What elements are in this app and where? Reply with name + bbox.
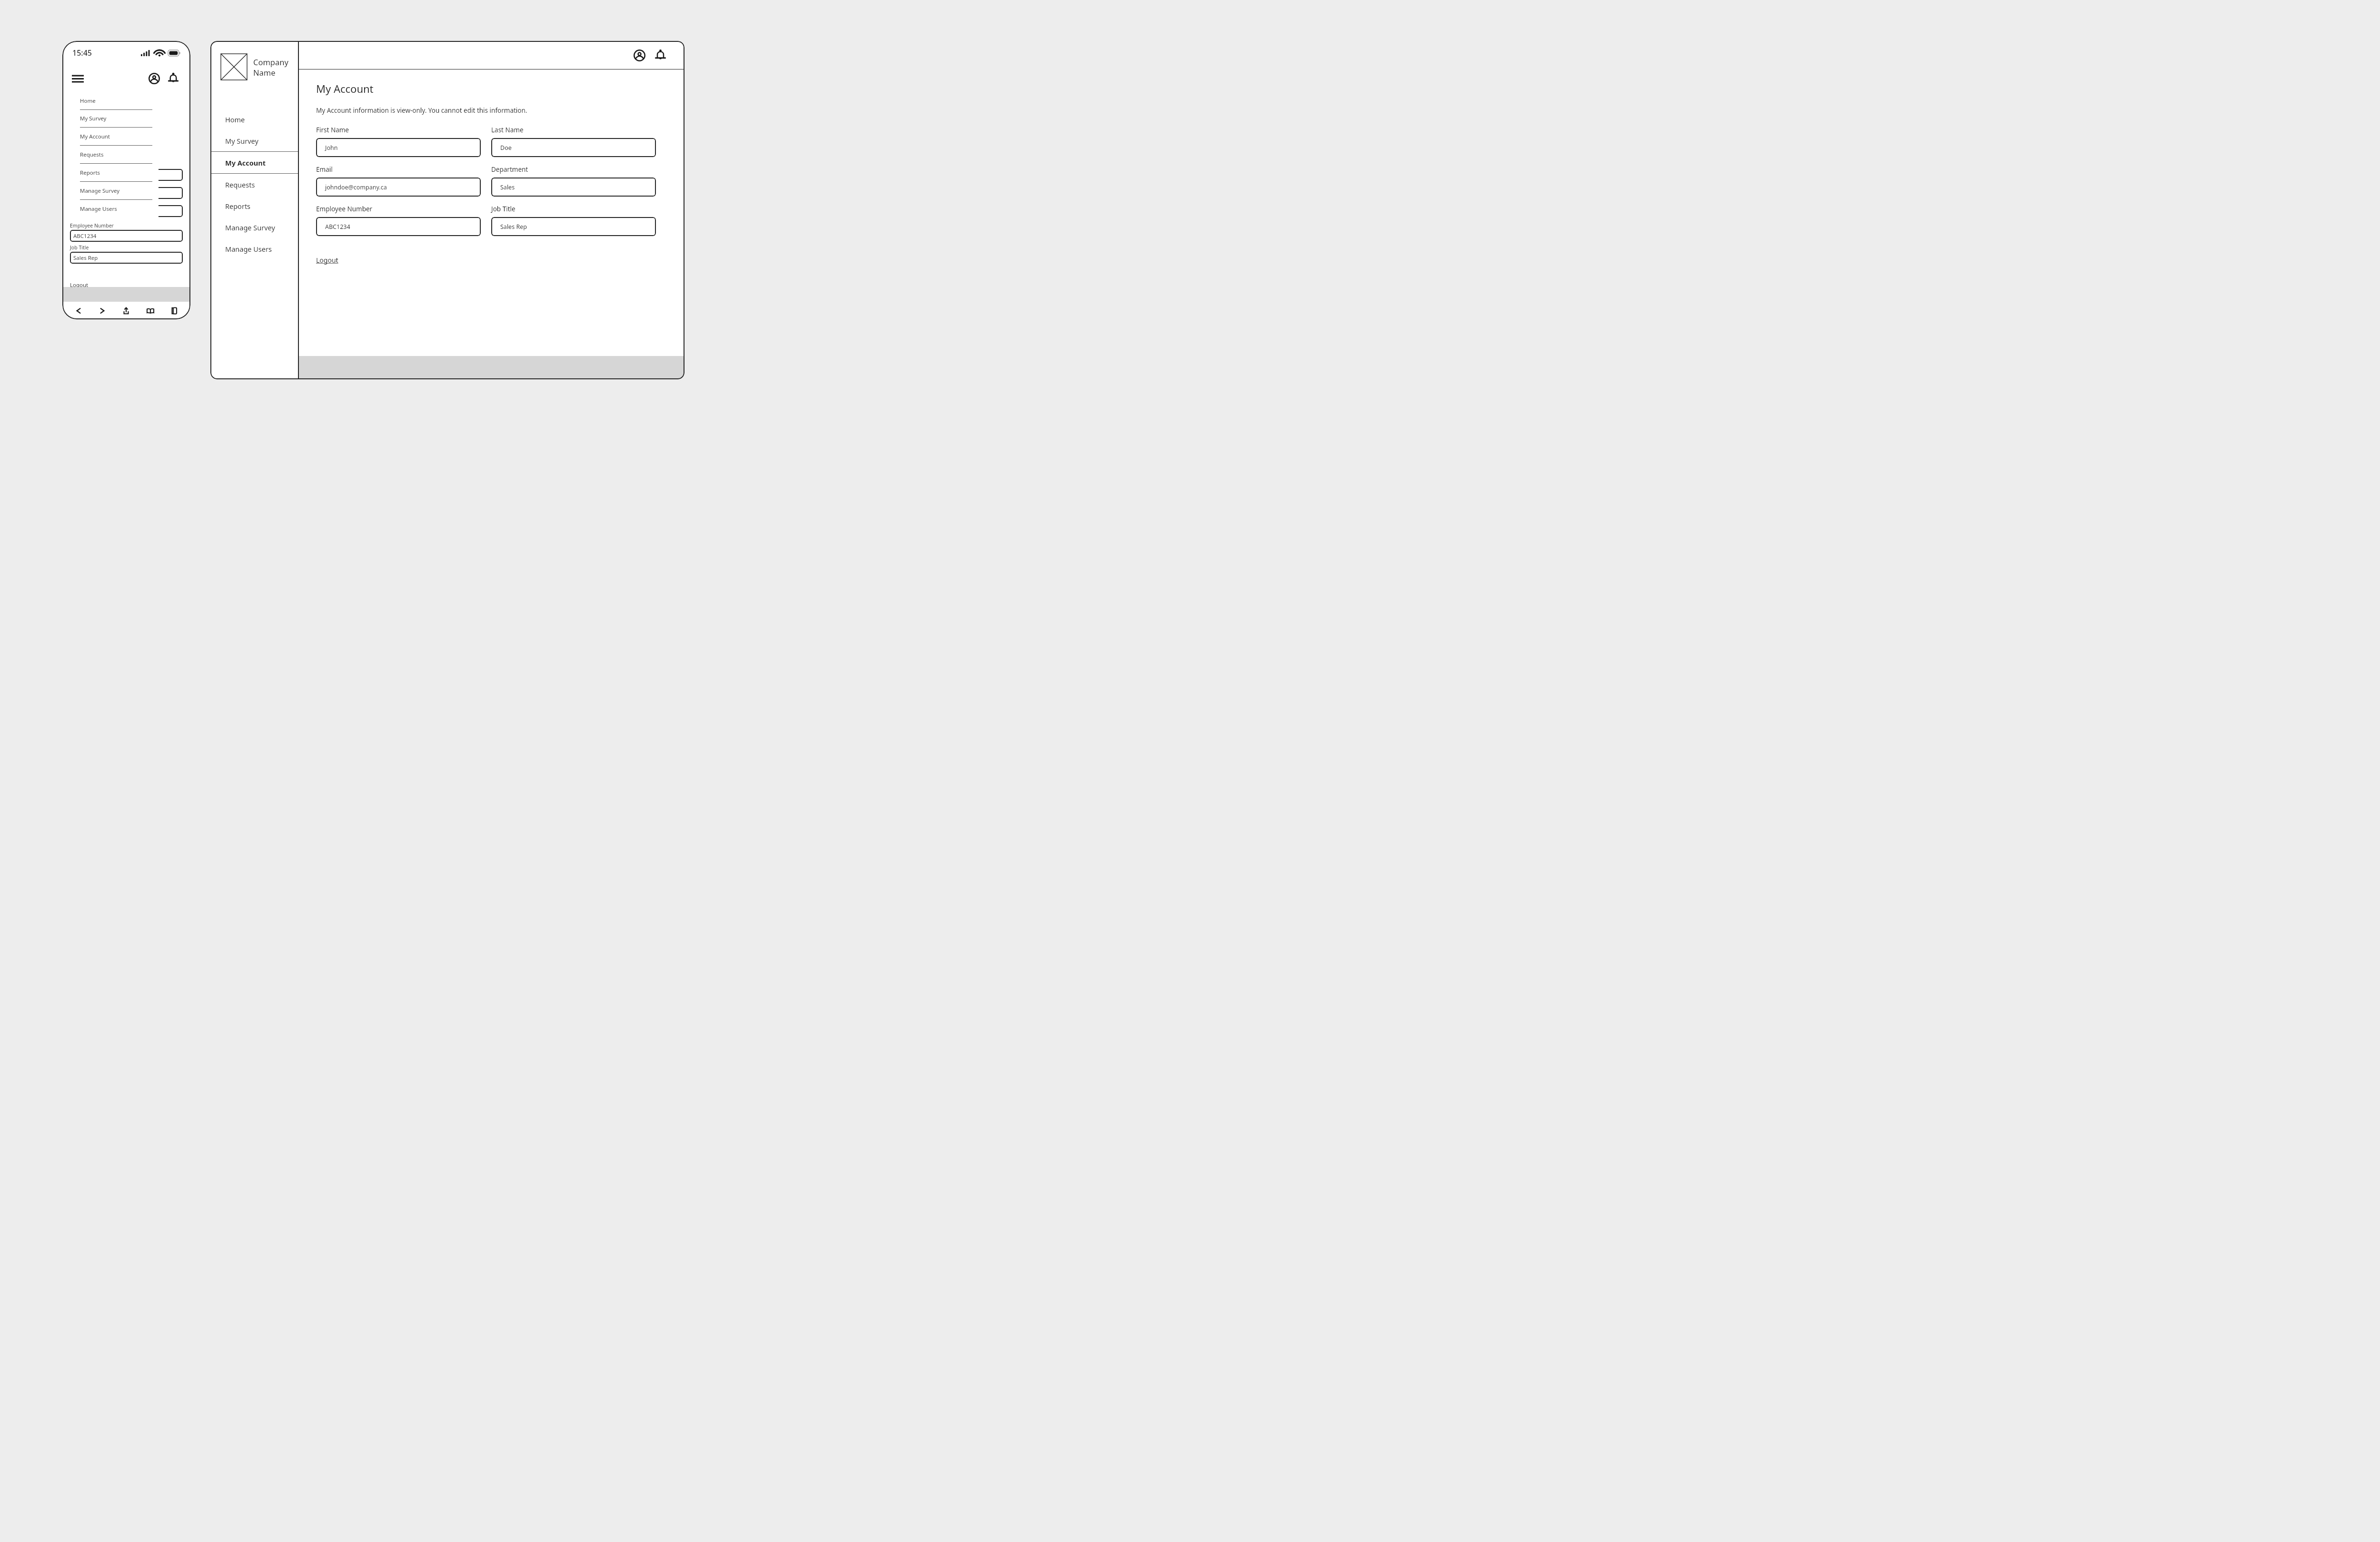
staticText: Last Name	[491, 126, 524, 134]
button[interactable]: ABC1234	[70, 230, 183, 242]
button[interactable]: Tabs	[167, 303, 182, 318]
staticText: My Survey	[225, 136, 258, 146]
button[interactable]: Manage Users	[210, 238, 298, 259]
staticText: My Survey	[80, 115, 107, 122]
button[interactable]: Requests	[210, 174, 298, 195]
staticText: My Account information is view-only. You…	[316, 106, 527, 115]
staticText: Department	[491, 165, 528, 174]
staticText: Email	[316, 165, 333, 174]
button[interactable]: Doe	[491, 138, 656, 157]
button[interactable]: Home	[80, 92, 152, 110]
staticText: Company	[253, 57, 288, 67]
staticText: Reports	[80, 169, 100, 177]
staticText: Manage Survey	[80, 187, 120, 195]
button[interactable]: Notifications	[652, 47, 668, 63]
staticText: Reports	[225, 201, 251, 211]
staticText: Sales	[500, 183, 515, 191]
staticText: Name	[253, 67, 276, 78]
staticText: My Account	[80, 133, 110, 140]
button[interactable]: Manage Users	[80, 200, 152, 218]
staticText: Manage Users	[225, 244, 272, 254]
button[interactable]: Account	[631, 47, 647, 63]
button[interactable]: Open navigation menu	[72, 70, 88, 87]
button[interactable]: Home	[210, 109, 298, 130]
staticText: ABC1234	[73, 232, 97, 240]
staticText: Home	[225, 115, 245, 124]
staticText: Job Title	[491, 205, 516, 213]
staticText: Manage Users	[80, 205, 117, 213]
staticText: Requests	[80, 151, 104, 158]
staticText: Sales Rep	[73, 254, 98, 262]
staticText: Home	[80, 97, 96, 105]
button[interactable]: Manage Survey	[80, 182, 152, 200]
button[interactable]: johndoe@company.ca	[316, 178, 481, 197]
button[interactable]: Account	[147, 71, 162, 86]
button[interactable]: Reports	[80, 164, 152, 182]
button[interactable]: John	[316, 138, 481, 157]
staticText: John	[325, 144, 338, 152]
staticText: My Account	[225, 158, 266, 168]
button[interactable]: Reports	[210, 195, 298, 217]
button[interactable]: Sales Rep	[70, 252, 183, 264]
button[interactable]: Sales Rep	[491, 217, 656, 236]
staticText: Requests	[225, 180, 255, 189]
button[interactable]: Notifications	[166, 71, 181, 86]
button[interactable]: My Survey	[210, 130, 298, 151]
staticText: Logout	[70, 281, 89, 287]
button[interactable]: Forward	[95, 303, 110, 318]
staticText: My Account	[316, 81, 374, 96]
button[interactable]: Sales	[491, 178, 656, 197]
button[interactable]: My Account	[80, 128, 152, 146]
staticText: First Name	[316, 126, 349, 134]
button[interactable]: Share	[119, 303, 134, 318]
button[interactable]: Logout	[316, 256, 338, 265]
staticText: Sales Rep	[500, 223, 527, 231]
staticText: Logout	[316, 256, 338, 265]
staticText: Job Title	[70, 244, 89, 251]
button[interactable]: ABC1234	[316, 217, 481, 236]
staticText: 15:45	[72, 48, 92, 58]
button[interactable]: Bookmarks	[143, 303, 158, 318]
staticText: ABC1234	[325, 223, 350, 231]
button[interactable]: Back	[71, 303, 86, 318]
staticText: Employee Number	[316, 205, 373, 213]
button[interactable]: Requests	[80, 146, 152, 164]
staticText: johndoe@company.ca	[325, 183, 387, 191]
button[interactable]: My Survey	[80, 110, 152, 128]
button[interactable]: Logout	[70, 281, 89, 287]
staticText: Manage Survey	[225, 223, 275, 232]
staticText: Doe	[500, 144, 512, 152]
button[interactable]: My Account	[210, 152, 298, 173]
button[interactable]: Manage Survey	[210, 217, 298, 238]
staticText: Employee Number	[70, 222, 114, 229]
